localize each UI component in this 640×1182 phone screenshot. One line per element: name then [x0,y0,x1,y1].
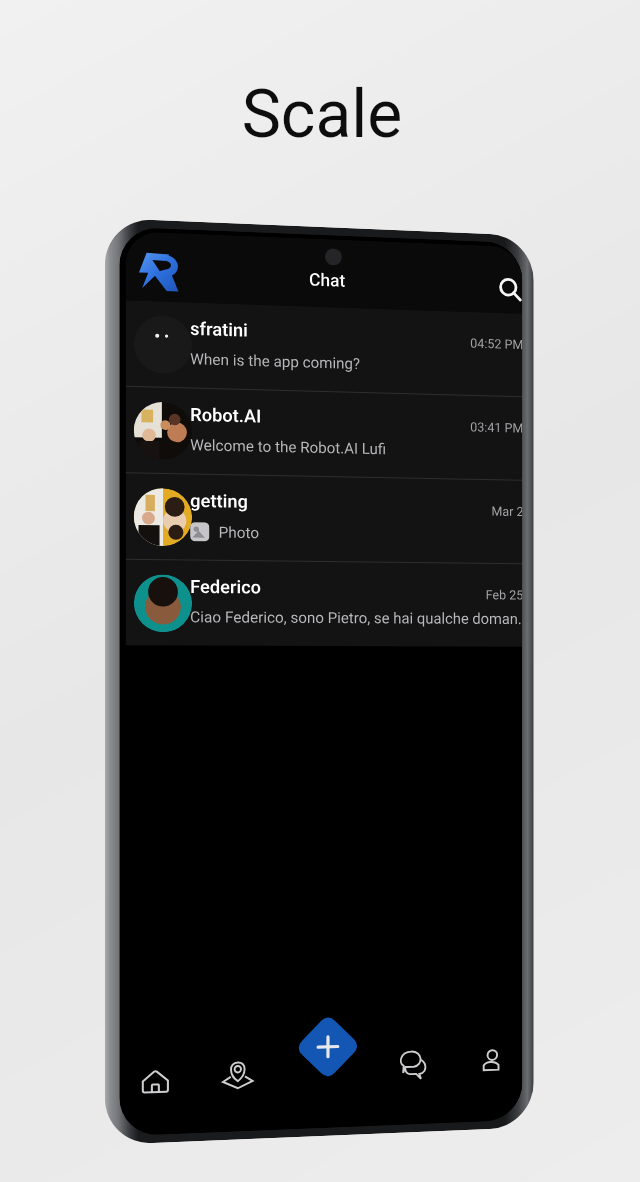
staticText: Ciao Federico, sono Pietro, se hai qualc… [190,608,522,628]
button[interactable]: Search [499,278,522,303]
button[interactable]: Messages [398,1048,429,1081]
staticText: sfratini [190,318,248,341]
staticText: 03:41 PM [470,420,522,436]
staticText: Scale [2,76,640,153]
staticText: 04:52 PM [470,336,522,352]
button[interactable]: New chat [292,1010,364,1084]
staticText: When is the app coming? [190,350,361,373]
staticText: Robot.AI [190,404,262,427]
staticText: Chat [309,269,346,292]
staticText: getting [190,490,248,512]
staticText: Welcome to the Robot.AI Lufi [190,436,386,458]
button[interactable]: App logo [137,249,183,296]
button[interactable]: Profile [475,1045,506,1077]
staticText: Mar 2 [491,504,522,519]
button[interactable]: Places [222,1057,254,1091]
button[interactable]: sfratini [126,300,522,396]
button[interactable]: Robot.AI [126,387,522,480]
staticText: Federico [190,576,261,597]
button[interactable]: Home [138,1064,173,1100]
staticText: Feb 25 [486,587,522,602]
button[interactable]: Federico [126,560,522,647]
button[interactable]: getting [126,473,522,563]
staticText: Photo [219,523,260,542]
